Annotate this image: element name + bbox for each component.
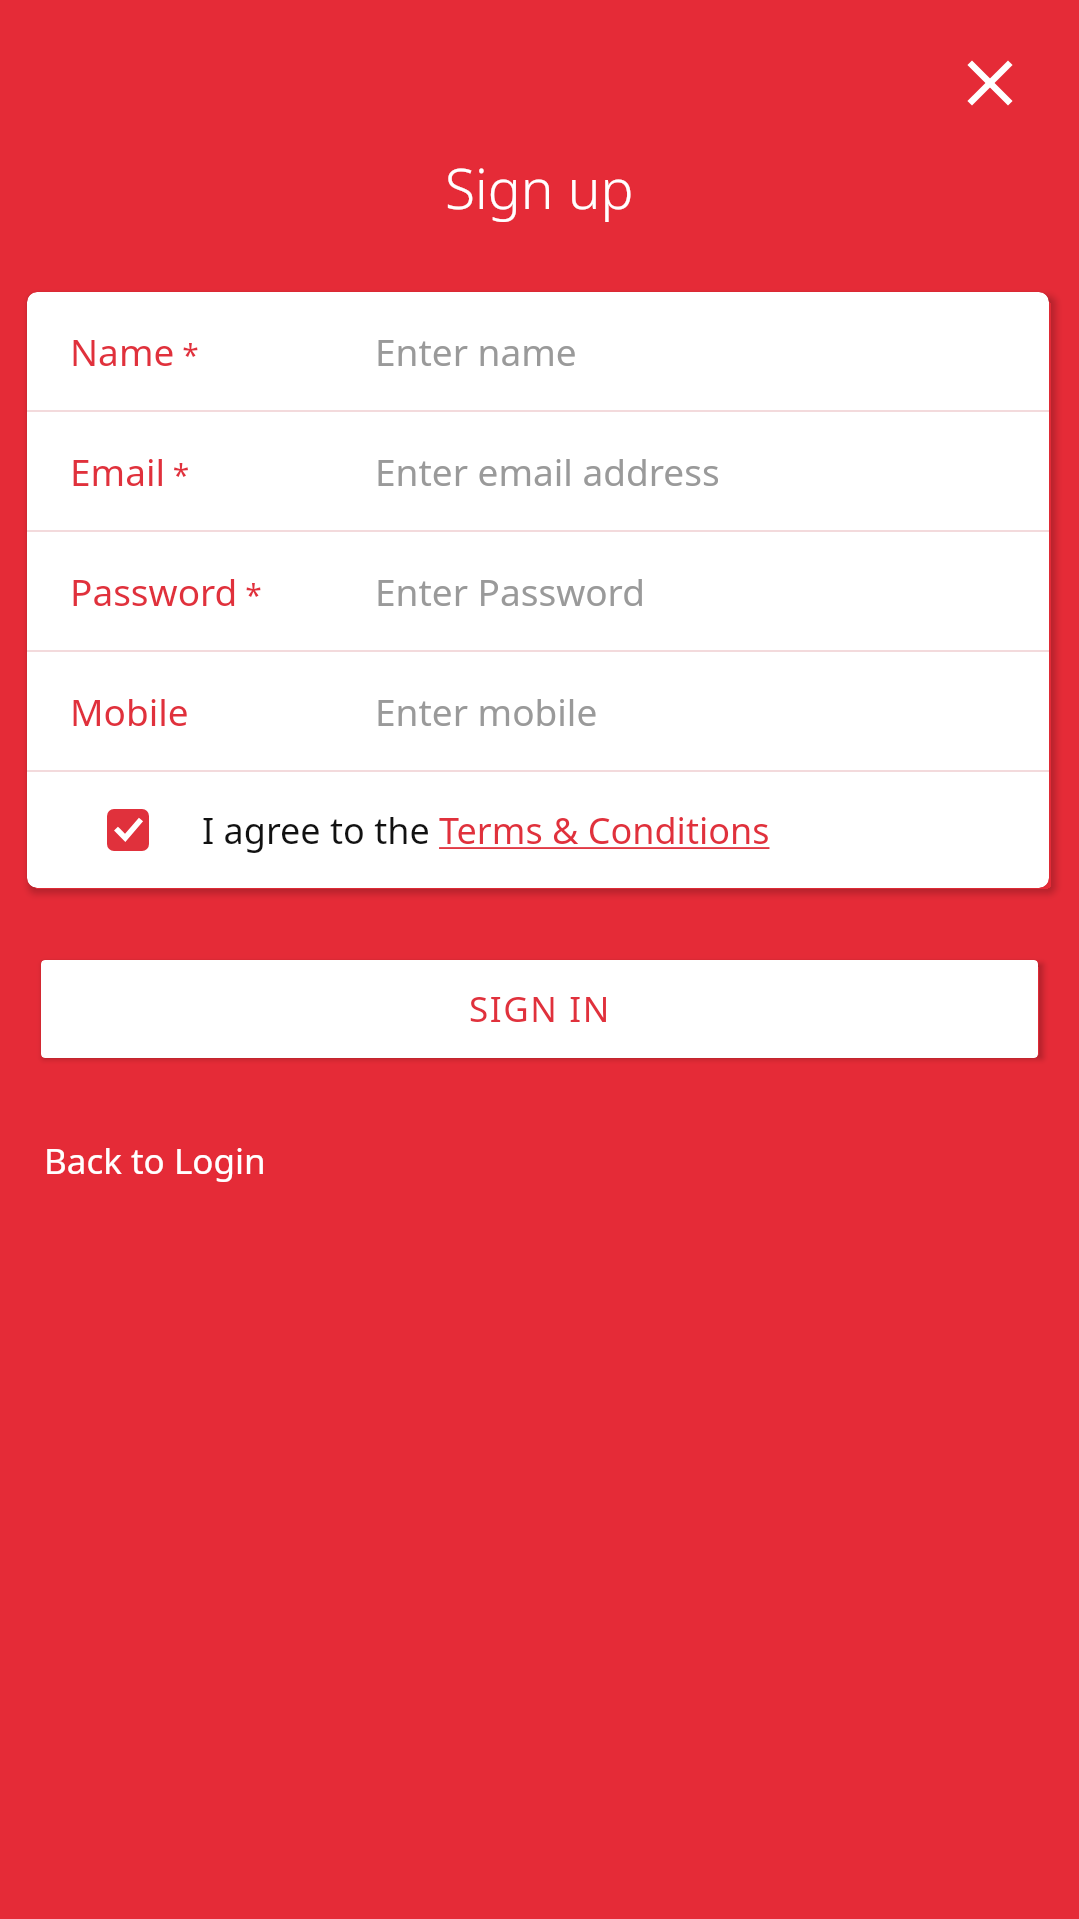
staticText: Back to Login (44, 1137, 266, 1185)
button[interactable]: Password * (27, 532, 1049, 650)
staticText: Name * (70, 326, 199, 376)
staticText: Enter mobile (375, 686, 598, 736)
staticText: SIGN IN (469, 985, 611, 1033)
button[interactable]: Agree to terms checkbox (107, 809, 149, 851)
staticText: I agree to the Terms & Conditions (202, 806, 770, 855)
staticText: Mobile (70, 686, 189, 736)
button[interactable]: Name * (27, 292, 1049, 410)
staticText: Password * (70, 566, 262, 616)
staticText: Enter Password (375, 566, 645, 616)
button[interactable]: Agree to terms checkbox (27, 772, 1049, 888)
staticText: Email * (70, 446, 190, 496)
staticText: Sign up (445, 150, 634, 225)
button[interactable]: Back to Login (28, 1125, 282, 1197)
staticText: Enter email address (375, 446, 720, 496)
button[interactable]: SIGN IN (41, 960, 1038, 1058)
button[interactable]: Email * (27, 412, 1049, 530)
button[interactable]: Close (950, 43, 1030, 123)
button[interactable]: Mobile (27, 652, 1049, 770)
staticText: Enter name (375, 326, 577, 376)
